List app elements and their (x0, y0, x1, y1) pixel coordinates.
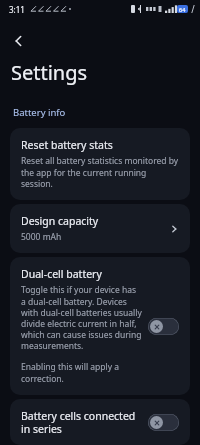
staticText: Toggle this if your device has a dual-ce… (21, 284, 142, 352)
staticText: 5000 mAh (21, 231, 62, 243)
staticText: Battery cells connected in series (21, 409, 142, 435)
staticText: Dual-cell battery (21, 267, 102, 281)
button[interactable]: Toggle (148, 414, 179, 431)
staticText: 3:11 (9, 4, 25, 15)
staticText: Reset all battery statistics monitored b… (21, 155, 179, 190)
staticText: Enabling this will apply a correction. (21, 361, 142, 385)
button[interactable]: Back (3, 25, 35, 57)
button[interactable]: Dual-cell battery (10, 257, 190, 395)
staticText: 64 (179, 6, 186, 13)
staticText: Settings (11, 59, 88, 86)
staticText: Battery info (13, 106, 66, 119)
button[interactable]: Reset battery stats (10, 128, 190, 200)
staticText: Design capacity (21, 214, 99, 228)
button[interactable]: Design capacity (10, 204, 190, 253)
staticText: Reset battery stats (21, 138, 113, 152)
button[interactable]: Toggle (148, 318, 179, 335)
button[interactable]: Battery cells connected in series (10, 399, 190, 445)
